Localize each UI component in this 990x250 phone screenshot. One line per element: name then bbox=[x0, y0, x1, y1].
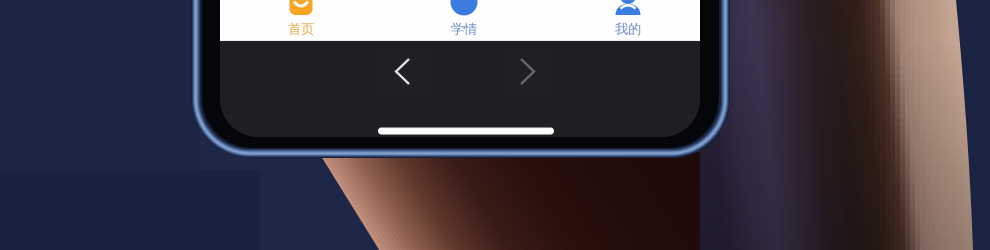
button[interactable]: 我的 bbox=[0, 0, 990, 250]
staticText: 首页 bbox=[288, 21, 314, 37]
button[interactable]: Back bbox=[0, 0, 990, 250]
button[interactable]: Forward bbox=[0, 0, 990, 250]
button[interactable]: 学情 bbox=[0, 0, 990, 250]
staticText: 我的 bbox=[615, 21, 641, 37]
button[interactable]: 首页 bbox=[0, 0, 990, 250]
staticText: 学情 bbox=[451, 21, 477, 37]
